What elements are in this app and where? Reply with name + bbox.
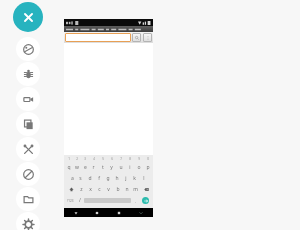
button[interactable]: Hide keyboard bbox=[136, 208, 145, 217]
staticText: u bbox=[119, 164, 123, 171]
staticText: c bbox=[98, 186, 101, 193]
staticText: 5 bbox=[102, 157, 104, 161]
button[interactable]: n bbox=[122, 184, 131, 195]
staticText: g bbox=[106, 175, 110, 182]
button[interactable]: Enter bbox=[140, 196, 151, 205]
staticText: d bbox=[88, 175, 92, 182]
staticText: s bbox=[79, 175, 82, 182]
staticText: 1 bbox=[68, 157, 70, 161]
button[interactable]: t bbox=[98, 161, 107, 173]
button[interactable]: w bbox=[73, 161, 81, 173]
staticText: 2 bbox=[76, 157, 78, 161]
button[interactable]: / bbox=[76, 195, 83, 206]
button[interactable]: Screenshot bbox=[16, 112, 40, 136]
button[interactable]: j bbox=[121, 173, 130, 184]
button[interactable] bbox=[65, 33, 131, 42]
staticText: 6 bbox=[111, 157, 113, 161]
staticText: 3 bbox=[84, 157, 86, 161]
staticText: n bbox=[125, 186, 129, 193]
button[interactable]: Record video bbox=[16, 87, 40, 111]
button[interactable]: Backspace bbox=[140, 184, 152, 195]
staticText: j bbox=[125, 175, 127, 182]
staticText: x bbox=[89, 186, 92, 193]
staticText: , bbox=[135, 198, 137, 203]
staticText: 8 bbox=[129, 157, 131, 161]
staticText: m bbox=[133, 186, 138, 193]
button[interactable]: s bbox=[76, 173, 85, 184]
button[interactable]: i bbox=[125, 161, 134, 173]
staticText: i bbox=[129, 164, 131, 171]
button[interactable]: Report bug bbox=[16, 62, 40, 86]
staticText: l bbox=[143, 175, 145, 182]
staticText: 7 bbox=[120, 157, 122, 161]
button[interactable]: Shift bbox=[65, 184, 77, 195]
button[interactable]: e bbox=[81, 161, 89, 173]
button[interactable]: u bbox=[116, 161, 125, 173]
button[interactable]: Settings bbox=[16, 212, 40, 230]
staticText: 4 bbox=[93, 157, 95, 161]
button[interactable]: h bbox=[112, 173, 121, 184]
button[interactable]: Rotate bbox=[16, 37, 40, 61]
staticText: k bbox=[133, 175, 136, 182]
button[interactable]: g bbox=[103, 173, 112, 184]
staticText: e bbox=[84, 164, 87, 171]
button[interactable]: m bbox=[131, 184, 140, 195]
button[interactable]: r bbox=[89, 161, 98, 173]
staticText: v bbox=[107, 186, 110, 193]
button[interactable]: Tools bbox=[16, 137, 40, 161]
staticText: t bbox=[102, 164, 104, 171]
button[interactable]: q bbox=[65, 161, 73, 173]
staticText: 9 bbox=[138, 157, 140, 161]
button[interactable]: f bbox=[94, 173, 103, 184]
button[interactable]: Search bbox=[132, 33, 141, 42]
button[interactable]: y bbox=[107, 161, 116, 173]
staticText: q bbox=[67, 164, 71, 171]
button[interactable]: v bbox=[104, 184, 113, 195]
button[interactable]: ?123 bbox=[65, 195, 76, 206]
staticText: ?123 bbox=[67, 199, 74, 203]
staticText: p bbox=[146, 164, 150, 171]
button[interactable]: Recents bbox=[114, 208, 123, 217]
button[interactable]: , bbox=[132, 195, 139, 206]
staticText: / bbox=[79, 197, 81, 204]
button[interactable]: Location off bbox=[16, 162, 40, 186]
button[interactable] bbox=[64, 26, 153, 32]
button[interactable]: Back bbox=[71, 208, 80, 217]
staticText: 0 bbox=[147, 157, 149, 161]
button[interactable]: Home bbox=[92, 208, 101, 217]
staticText: b bbox=[116, 186, 120, 193]
staticText: w bbox=[75, 164, 79, 171]
button[interactable]: b bbox=[113, 184, 122, 195]
button[interactable]: k bbox=[130, 173, 139, 184]
staticText: r bbox=[92, 164, 95, 171]
button[interactable]: o bbox=[134, 161, 143, 173]
staticText: z bbox=[80, 186, 83, 193]
button[interactable]: x bbox=[86, 184, 95, 195]
staticText: y bbox=[110, 164, 113, 171]
staticText: f bbox=[98, 175, 100, 182]
button[interactable]: More options bbox=[143, 33, 152, 42]
button[interactable]: c bbox=[95, 184, 104, 195]
button[interactable]: l bbox=[139, 173, 148, 184]
staticText: a bbox=[71, 175, 74, 182]
button[interactable]: p bbox=[143, 161, 152, 173]
staticText: h bbox=[115, 175, 119, 182]
button[interactable]: Close bbox=[13, 2, 43, 32]
button[interactable]: z bbox=[77, 184, 86, 195]
button[interactable]: Folder bbox=[16, 187, 40, 211]
staticText: o bbox=[137, 164, 141, 171]
button[interactable]: a bbox=[68, 173, 76, 184]
button[interactable]: d bbox=[85, 173, 94, 184]
